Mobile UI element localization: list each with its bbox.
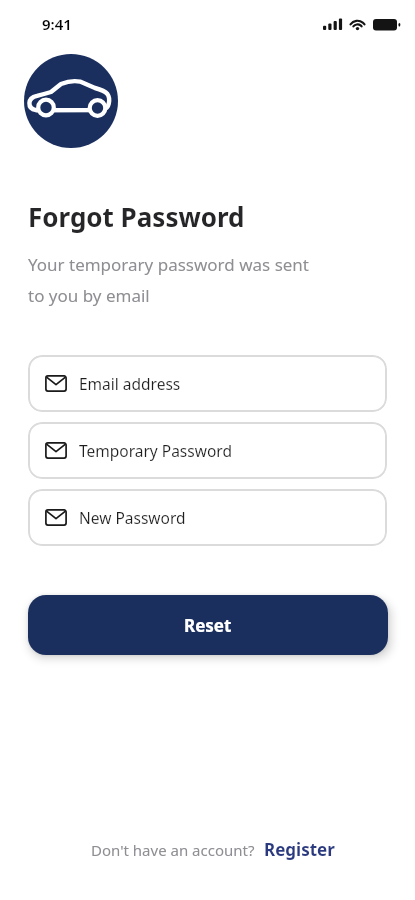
staticText: Your temporary password was sent to you … [28, 253, 310, 307]
staticText: New Password [79, 507, 186, 528]
button[interactable]: Reset [28, 595, 388, 655]
staticText: Email address [79, 373, 181, 394]
button[interactable]: New Password [28, 489, 387, 546]
button[interactable]: Temporary Password [28, 422, 387, 479]
staticText: Temporary Password [79, 440, 232, 461]
staticText: 9:41 [42, 14, 72, 34]
button[interactable]: Email address [28, 355, 387, 412]
staticText: Don't have an account? [91, 840, 255, 860]
staticText: Forgot Password [28, 199, 245, 234]
button[interactable]: Register [264, 838, 335, 861]
staticText: Reset [184, 614, 232, 637]
